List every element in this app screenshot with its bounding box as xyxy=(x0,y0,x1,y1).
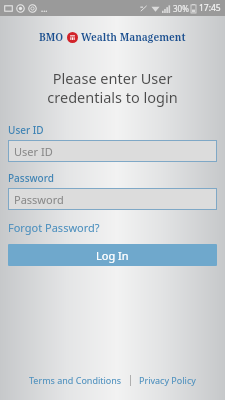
staticText: User ID xyxy=(14,144,53,159)
button[interactable]: Terms and Conditions xyxy=(27,372,124,388)
staticText: User ID xyxy=(8,123,44,137)
staticText: Password xyxy=(8,171,54,185)
button[interactable]: Privacy Policy xyxy=(137,372,198,388)
button[interactable]: Forgot Password? xyxy=(8,219,100,236)
button[interactable]: User ID xyxy=(8,140,217,162)
button[interactable]: Log In xyxy=(8,244,217,266)
staticText: BMO xyxy=(39,30,64,44)
staticText: 30% xyxy=(173,3,189,14)
staticText: Wealth Management xyxy=(81,30,186,44)
staticText: Please enter User credentials to login xyxy=(0,68,225,107)
staticText: ... xyxy=(41,3,48,14)
staticText: Password xyxy=(14,192,64,207)
staticText: Privacy Policy xyxy=(139,374,196,386)
staticText: Forgot Password? xyxy=(8,220,100,235)
staticText: Terms and Conditions xyxy=(29,374,122,386)
staticText: Log In xyxy=(96,248,129,263)
staticText: 17:45 xyxy=(199,2,221,14)
button[interactable]: Password xyxy=(8,188,217,210)
